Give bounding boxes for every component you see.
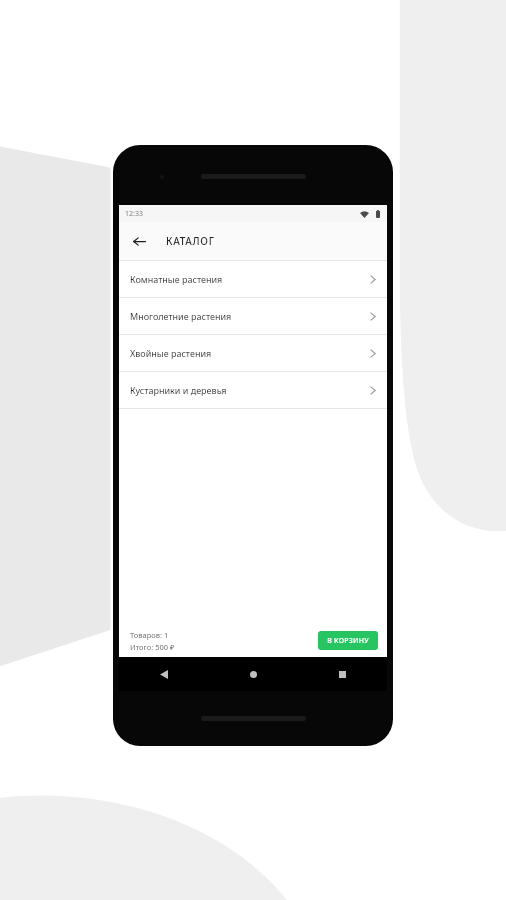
staticText: Кустарники и деревья [130, 384, 370, 396]
button[interactable]: Кустарники и деревья [119, 372, 387, 408]
staticText: Хвойные растения [130, 347, 370, 359]
staticText: Итого: 500 ₽ [130, 642, 175, 652]
staticText: Товаров: 1 [130, 630, 169, 640]
button[interactable]: Recent apps [298, 657, 387, 691]
staticText: 12:33 [125, 209, 143, 219]
button[interactable]: Многолетние растения [119, 298, 387, 334]
button[interactable]: Комнатные растения [119, 261, 387, 297]
button[interactable]: В КОРЗИНУ [318, 631, 378, 650]
button[interactable]: Back [126, 228, 153, 255]
button[interactable]: Back [119, 657, 209, 691]
button[interactable]: Хвойные растения [119, 335, 387, 371]
staticText: В КОРЗИНУ [327, 636, 369, 646]
button[interactable]: Home [209, 657, 298, 691]
staticText: КАТАЛОГ [166, 234, 215, 248]
staticText: Многолетние растения [130, 310, 370, 322]
staticText: Комнатные растения [130, 273, 370, 285]
